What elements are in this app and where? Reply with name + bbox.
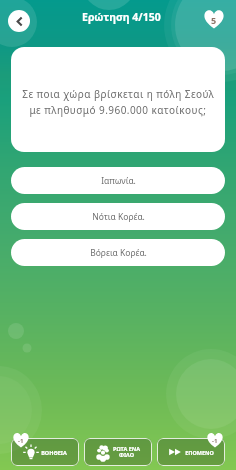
staticText: 5 xyxy=(211,14,217,26)
button[interactable]: Βόρεια Κορέα. xyxy=(11,239,225,266)
staticText: Βόρεια Κορέα. xyxy=(90,247,147,259)
staticText: ΒΟΗΘΕΙΑ xyxy=(41,449,67,456)
staticText: ΕΠΟΜΕΝΟ xyxy=(185,449,214,456)
staticText: ΡΩΤΑ ΕΝΑ ΦΙΛΟ xyxy=(113,445,140,459)
button[interactable]: ΡΩΤΑ ΕΝΑ ΦΙΛΟ xyxy=(84,438,152,466)
button[interactable]: Ιαπωνία. xyxy=(11,167,225,194)
button[interactable]: Νότια Κορέα. xyxy=(11,203,225,230)
button[interactable]: ΕΠΟΜΕΝΟ xyxy=(157,438,225,466)
button[interactable]: Lives remaining xyxy=(204,9,224,29)
staticText: Σε ποια χώρα βρίσκεται η πόλη Σεούλ με π… xyxy=(22,87,214,117)
staticText: Ιαπωνία. xyxy=(101,175,136,187)
staticText: Ερώτηση 4/150 xyxy=(82,10,161,24)
staticText: -1 xyxy=(18,437,24,445)
button[interactable]: Back xyxy=(8,10,30,32)
button[interactable]: ΒΟΗΘΕΙΑ xyxy=(11,438,79,466)
staticText: Νότια Κορέα. xyxy=(92,211,145,223)
staticText: -1 xyxy=(212,437,218,445)
